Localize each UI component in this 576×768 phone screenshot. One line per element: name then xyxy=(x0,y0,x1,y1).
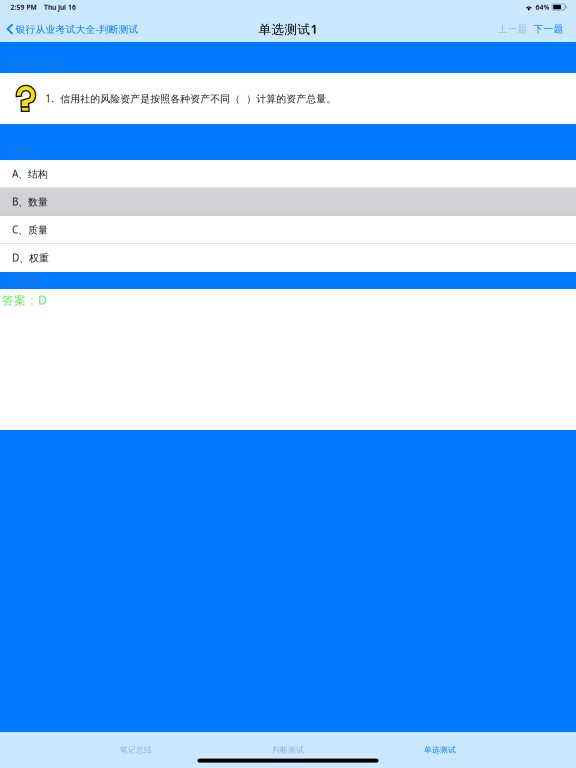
staticText: 笔记总结 xyxy=(120,745,152,755)
button[interactable]: 下一题 xyxy=(530,20,566,37)
staticText: 判断测试 xyxy=(272,745,304,755)
staticText: 银行从业考试大全-判断测试 xyxy=(16,22,139,36)
staticText: 2:59 PM xyxy=(10,2,36,12)
staticText: 正确答案: xyxy=(11,275,41,285)
staticText: 上一题 xyxy=(497,23,527,35)
staticText: C、质量 xyxy=(12,223,48,236)
staticText: Thu Jul 16 xyxy=(44,2,76,12)
button[interactable]: 上一题 xyxy=(494,20,530,37)
button[interactable]: A、结构 xyxy=(0,160,576,188)
staticText: 64% xyxy=(535,2,549,12)
staticText: 请选择: xyxy=(11,145,34,155)
staticText: 单选测试1 xyxy=(258,20,317,38)
staticText: A、结构 xyxy=(12,167,48,180)
button[interactable]: 笔记总结 xyxy=(60,737,212,763)
staticText: 1. 信用社的风险资产是按照各种资产不同（ ）计算的资产总量。 xyxy=(45,92,336,105)
button[interactable]: C、质量 xyxy=(0,216,576,244)
staticText: 第1题 /共 10题 xyxy=(11,59,58,69)
button[interactable]: D、权重 xyxy=(0,244,576,272)
button[interactable]: 银行从业考试大全-判断测试 xyxy=(0,20,145,37)
staticText: B、数量 xyxy=(12,195,48,208)
staticText: 答案：D xyxy=(2,292,47,308)
staticText: 单选测试 xyxy=(424,745,456,755)
staticText: D、权重 xyxy=(12,251,49,264)
staticText: 下一题 xyxy=(533,23,563,35)
button[interactable]: 判断测试 xyxy=(212,737,364,763)
button[interactable]: B、数量 xyxy=(0,188,576,216)
button[interactable]: 单选测试 xyxy=(364,737,516,763)
